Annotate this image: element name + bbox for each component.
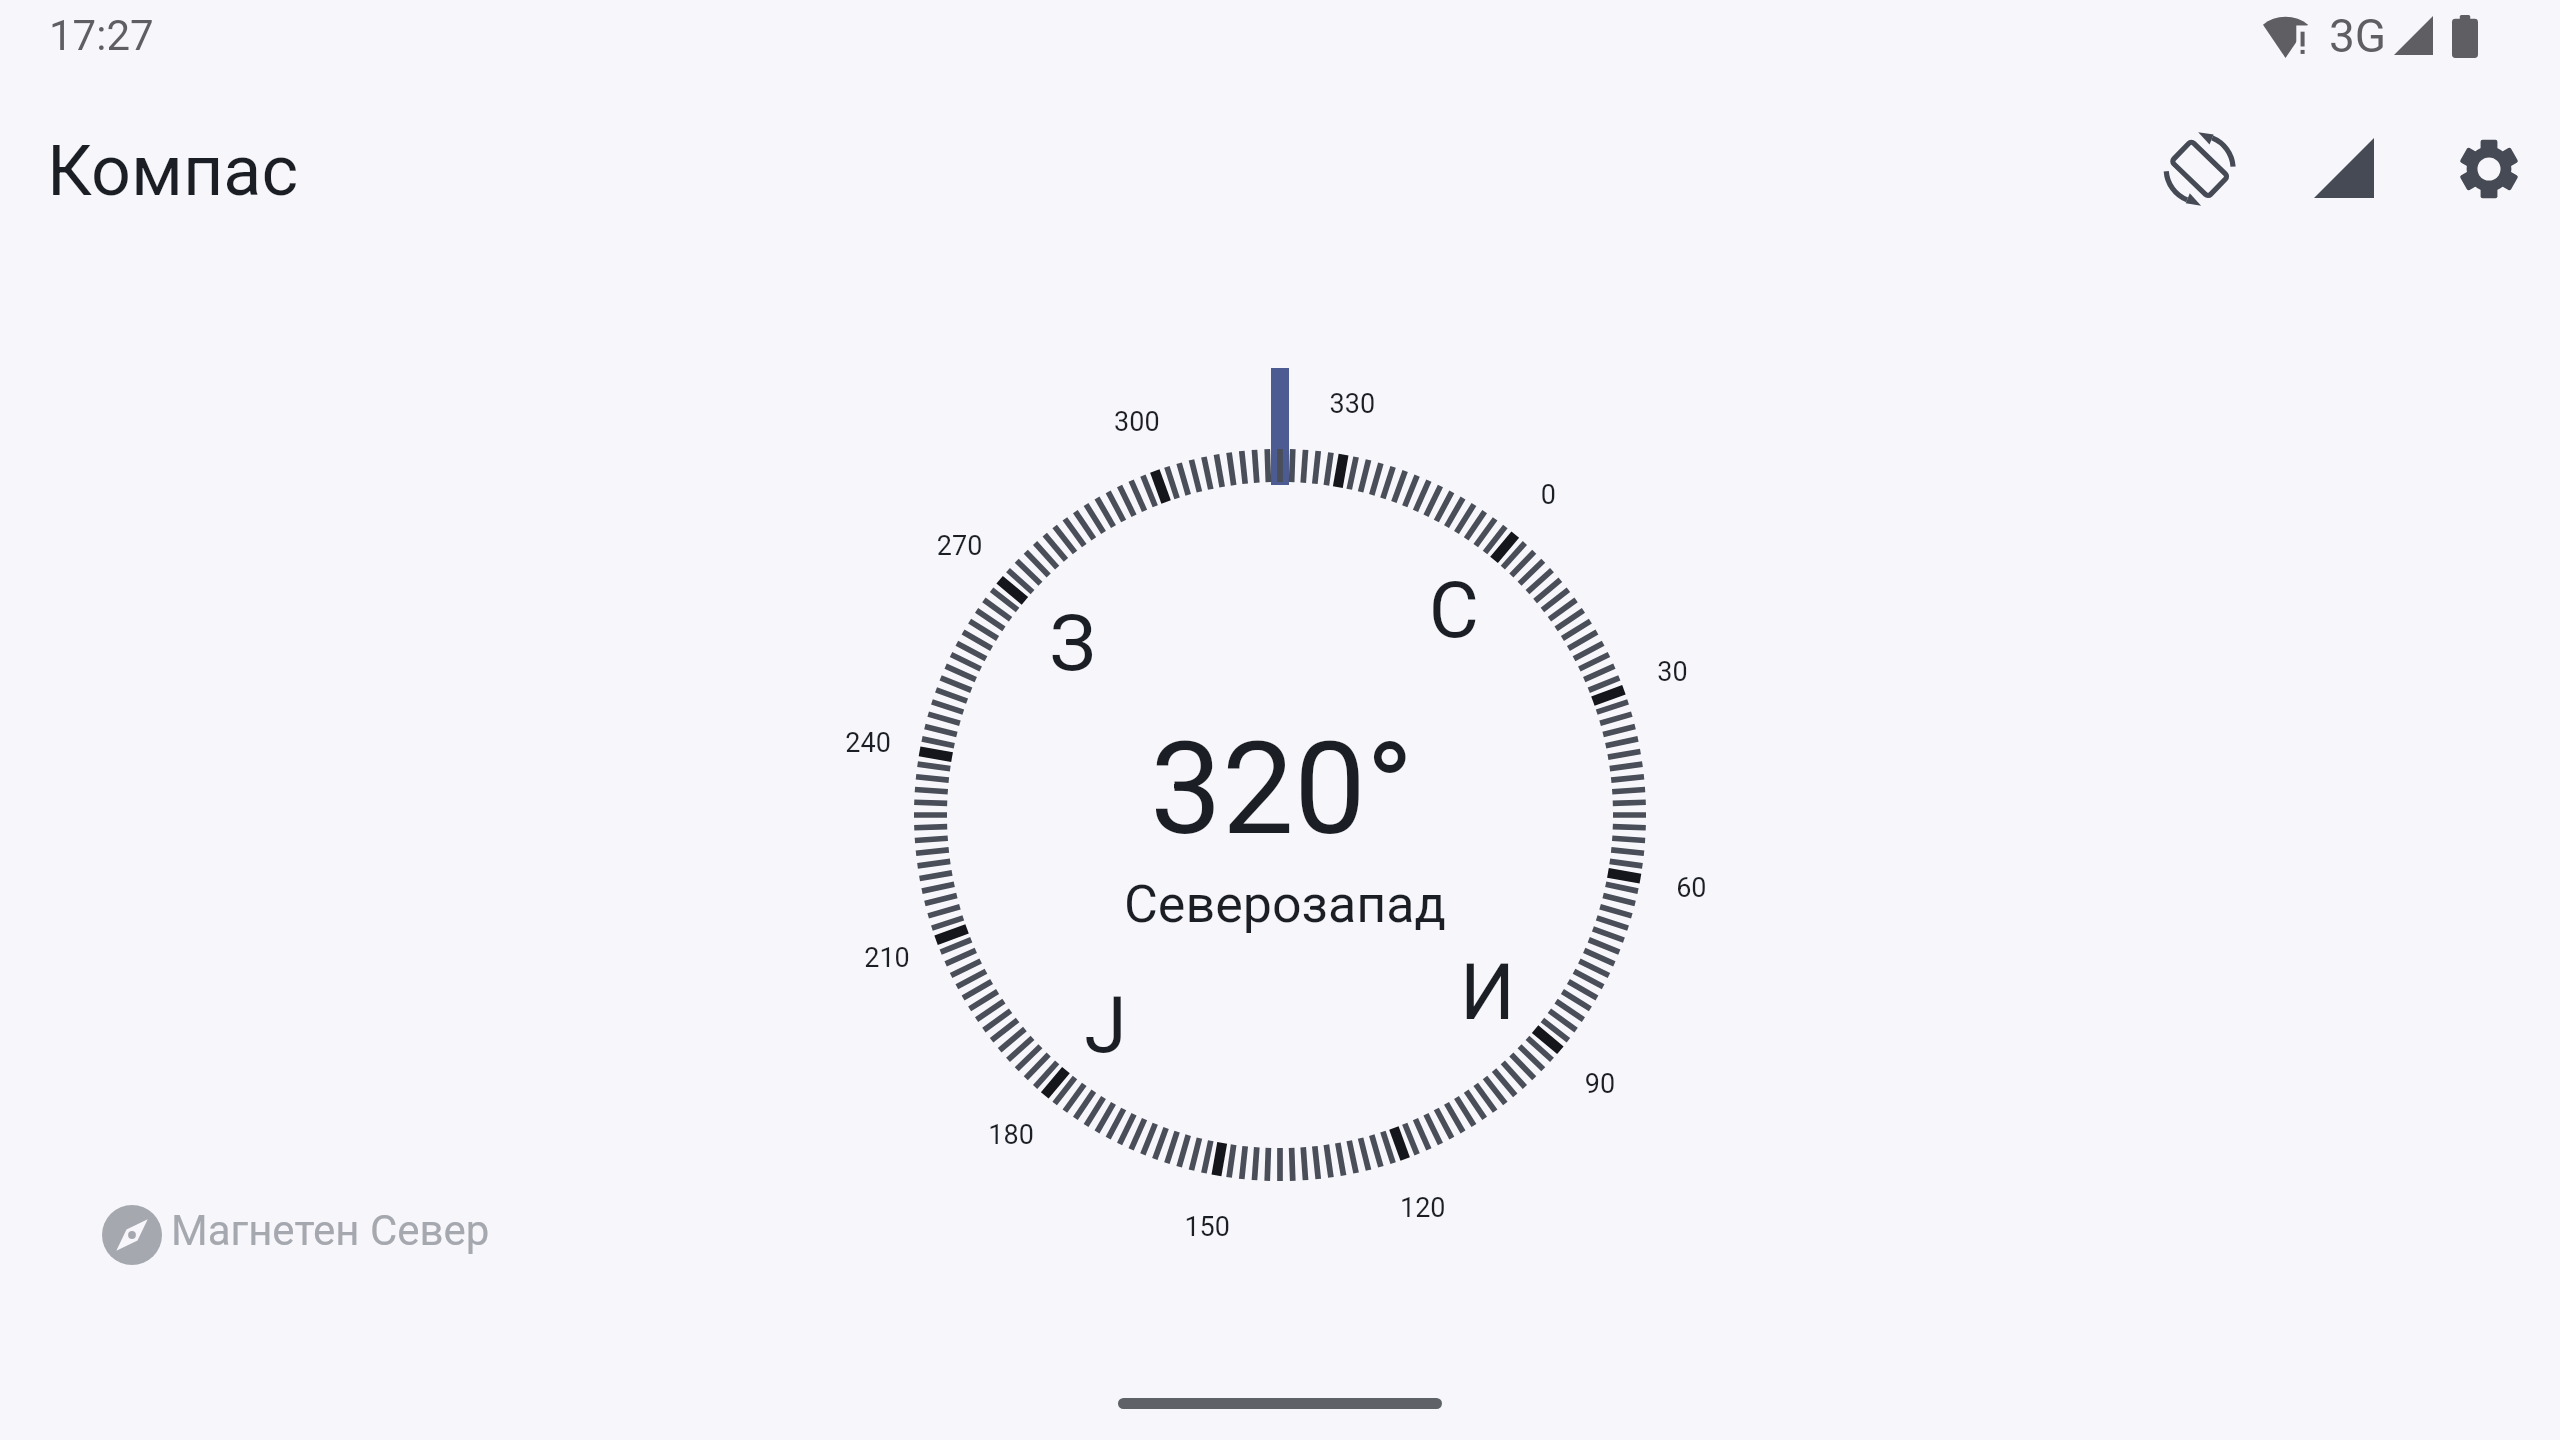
button[interactable]: Магнетен Север [98, 1201, 498, 1269]
button[interactable]: Settings [2440, 120, 2536, 216]
button[interactable]: Sensor accuracy [2296, 120, 2392, 216]
button[interactable]: Screen rotation [2152, 120, 2248, 216]
